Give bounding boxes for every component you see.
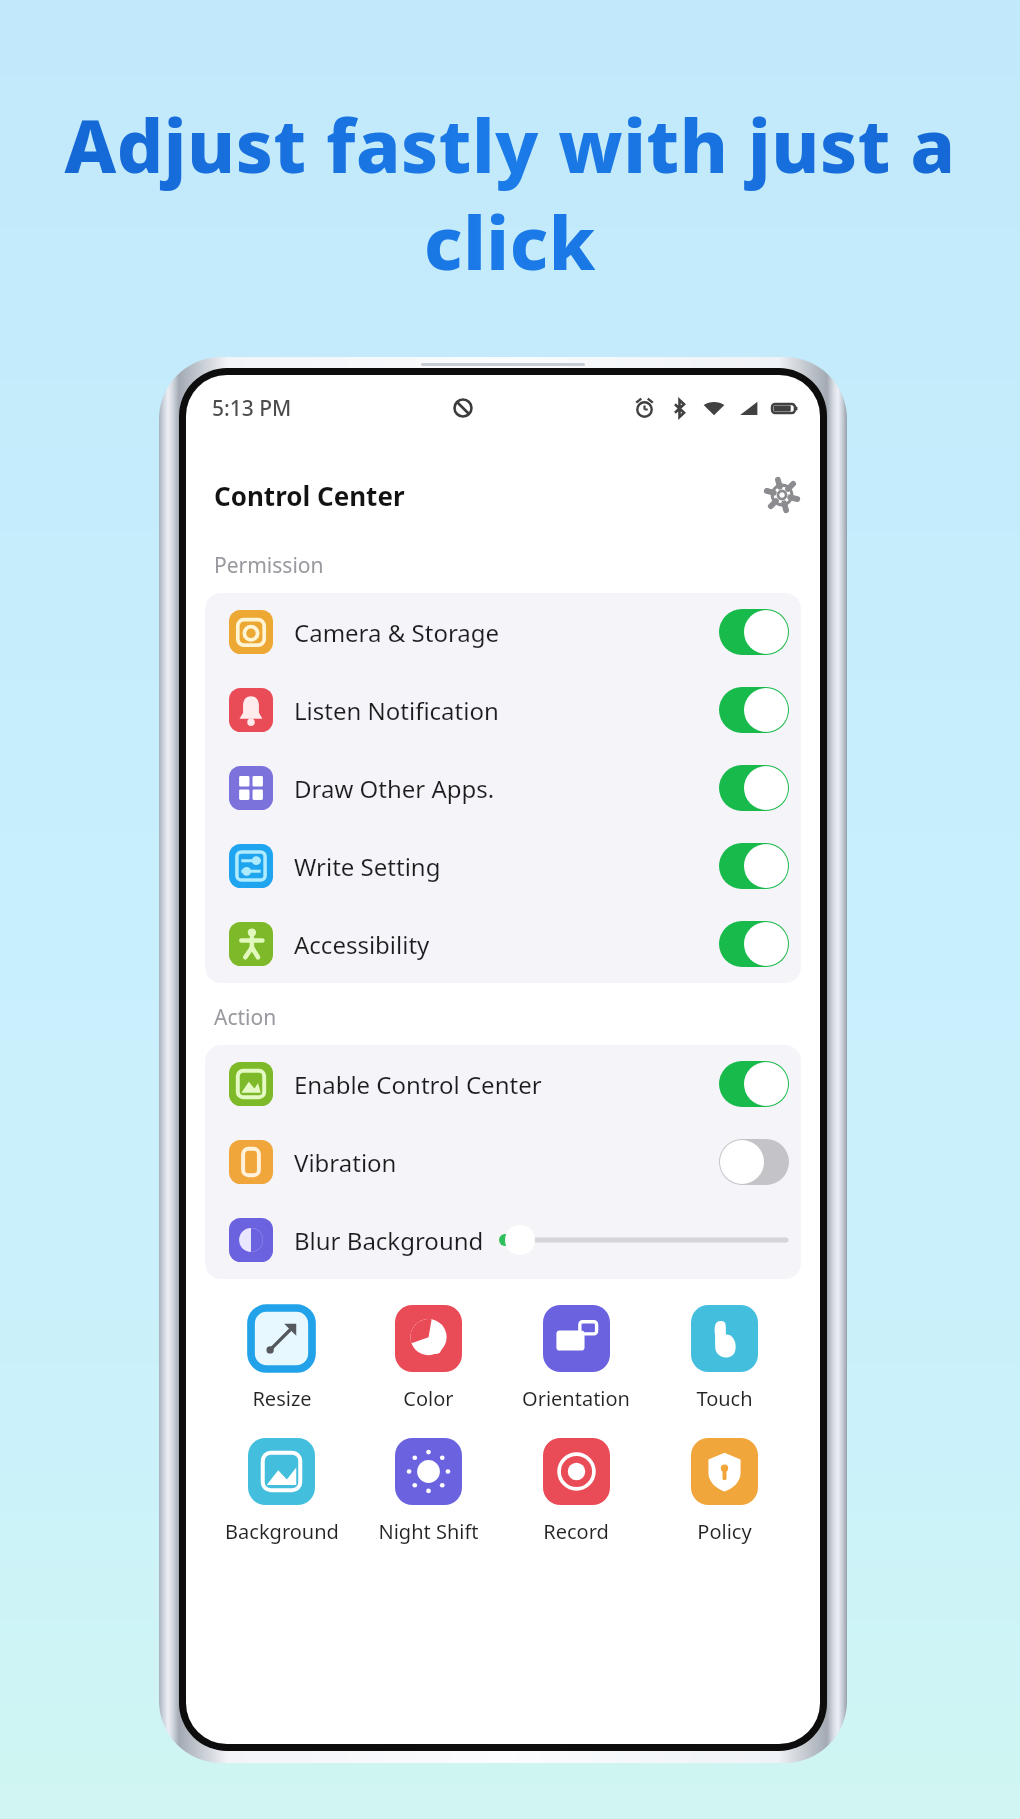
staticText: Write Setting bbox=[294, 850, 441, 883]
button[interactable]: Vibration bbox=[205, 1123, 801, 1201]
staticText: Listen Notification bbox=[294, 694, 499, 727]
staticText: Draw Other Apps. bbox=[294, 772, 495, 805]
button[interactable]: Blur Background bbox=[205, 1201, 801, 1279]
button[interactable]: Orientation bbox=[502, 1301, 650, 1416]
staticText: Vibration bbox=[294, 1146, 397, 1179]
staticText: Permission bbox=[214, 551, 324, 580]
button[interactable]: Night Shift bbox=[355, 1434, 502, 1549]
button[interactable]: Listen Notification bbox=[205, 671, 801, 749]
button[interactable]: Resize bbox=[208, 1301, 355, 1416]
button[interactable]: Color bbox=[355, 1301, 502, 1416]
button[interactable]: Draw Other Apps. bbox=[205, 749, 801, 827]
button[interactable]: Vibration, off bbox=[719, 1139, 789, 1185]
staticText: Policy bbox=[697, 1518, 752, 1545]
staticText: Camera & Storage bbox=[294, 616, 500, 649]
staticText: 5:13 PM bbox=[212, 394, 292, 423]
button[interactable]: Touch bbox=[650, 1301, 798, 1416]
button[interactable]: Camera & Storage bbox=[205, 593, 801, 671]
button[interactable]: Policy bbox=[650, 1434, 798, 1549]
button[interactable]: Record bbox=[502, 1434, 650, 1549]
staticText: Orientation bbox=[522, 1385, 630, 1412]
button[interactable]: Enable Control Center, on bbox=[719, 1061, 789, 1107]
staticText: Accessibility bbox=[294, 928, 430, 961]
staticText: Blur Background bbox=[294, 1224, 484, 1257]
staticText: Night Shift bbox=[378, 1518, 479, 1545]
button[interactable]: Accessibility, on bbox=[719, 921, 789, 967]
button[interactable]: Blur amount bbox=[498, 1220, 789, 1260]
staticText: Color bbox=[403, 1385, 454, 1412]
staticText: Background bbox=[225, 1518, 339, 1545]
staticText: Adjust fastly with just a click bbox=[64, 95, 956, 292]
button[interactable]: Listen Notification, on bbox=[719, 687, 789, 733]
staticText: Record bbox=[543, 1518, 609, 1545]
button[interactable]: Accessibility bbox=[205, 905, 801, 983]
staticText: Control Center bbox=[214, 478, 405, 513]
button[interactable]: Settings bbox=[760, 473, 804, 517]
staticText: Action bbox=[214, 1003, 277, 1032]
button[interactable]: Write Setting, on bbox=[719, 843, 789, 889]
button[interactable]: Camera & Storage, on bbox=[719, 609, 789, 655]
button[interactable]: Enable Control Center bbox=[205, 1045, 801, 1123]
staticText: Enable Control Center bbox=[294, 1068, 542, 1101]
staticText: Touch bbox=[696, 1385, 753, 1412]
button[interactable]: Draw Other Apps., on bbox=[719, 765, 789, 811]
button[interactable]: Write Setting bbox=[205, 827, 801, 905]
button[interactable]: Background bbox=[208, 1434, 355, 1549]
staticText: Resize bbox=[252, 1385, 312, 1412]
